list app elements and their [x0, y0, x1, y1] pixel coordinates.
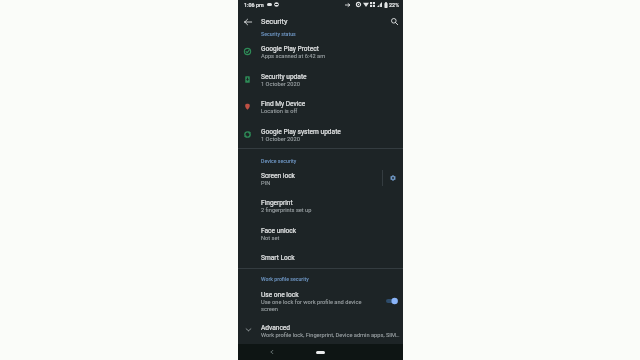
button[interactable]: Smart Lock — [238, 248, 403, 267]
staticText: Google Play system update — [261, 128, 341, 136]
staticText: Security update — [261, 73, 307, 81]
button[interactable]: Use one lock toggle — [386, 295, 398, 307]
staticText: PIN — [261, 180, 271, 187]
button[interactable]: Google Play Protect — [238, 39, 403, 66]
staticText: Use one lock for work profile and device… — [261, 299, 368, 312]
staticText: Apps scanned at 6:42 am — [261, 53, 326, 60]
staticText: Find My Device — [261, 100, 306, 108]
staticText: Face unlock — [261, 227, 297, 235]
button[interactable]: Search — [385, 11, 403, 32]
button[interactable]: Security update — [238, 67, 403, 94]
button[interactable]: Screen lock settings — [384, 170, 402, 186]
button[interactable]: Face unlock — [238, 221, 403, 248]
button[interactable]: Google Play system update — [238, 122, 403, 149]
staticText: Advanced — [261, 324, 291, 332]
staticText: Smart Lock — [261, 254, 295, 262]
button[interactable]: Fingerprint — [238, 193, 403, 220]
staticText: Use one lock — [261, 291, 299, 299]
staticText: 2 fingerprints set up — [261, 207, 312, 214]
staticText: 1 October 2020 — [261, 81, 300, 88]
button[interactable]: Use one lock — [238, 285, 403, 315]
staticText: Google Play Protect — [261, 45, 319, 53]
staticText: Device security — [261, 158, 297, 164]
button[interactable]: Back — [266, 346, 277, 357]
staticText: 1 October 2020 — [261, 136, 300, 143]
staticText: 22% — [389, 2, 400, 8]
staticText: Location is off — [261, 108, 298, 115]
staticText: Screen lock — [261, 172, 295, 180]
button[interactable]: Navigate up — [239, 11, 257, 32]
staticText: Not set — [261, 235, 280, 242]
staticText: 1:06 pm — [244, 2, 264, 8]
staticText: Security status — [261, 31, 296, 37]
button[interactable]: Advanced — [238, 319, 403, 343]
staticText: Security — [261, 17, 288, 26]
staticText: Fingerprint — [261, 199, 293, 207]
button[interactable]: Screen lock — [238, 166, 403, 193]
button[interactable]: Home — [316, 351, 325, 354]
staticText: Work profile security — [261, 276, 309, 282]
staticText: Work profile lock, Fingerprint, Device a… — [261, 332, 400, 339]
button[interactable]: Find My Device — [238, 94, 403, 121]
